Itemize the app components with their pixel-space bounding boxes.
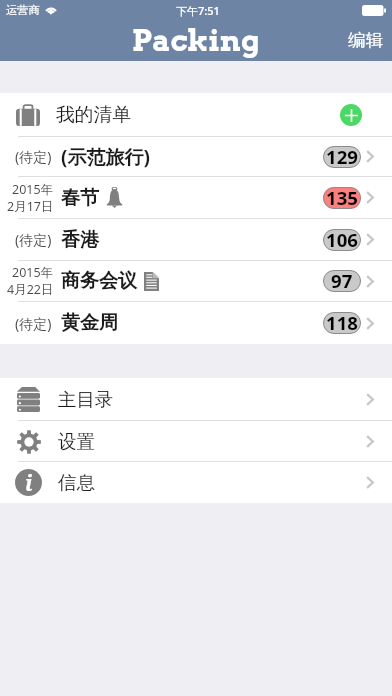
button[interactable]: (待定) (0, 302, 392, 344)
staticText: 118 (326, 312, 358, 332)
staticText: 我的清单 (56, 103, 132, 127)
staticText: 运营商 (6, 3, 40, 17)
button[interactable]: 编辑 (344, 23, 387, 57)
staticText: 2015年 (12, 181, 54, 198)
staticText: 黄金周 (61, 311, 118, 335)
button[interactable]: (待定) (0, 219, 392, 260)
staticText: Packing (132, 23, 260, 59)
button[interactable]: i (0, 462, 392, 503)
staticText: 4月22日 (7, 281, 54, 298)
staticText: (示范旅行) (61, 144, 150, 170)
staticText: 2月17日 (7, 198, 54, 215)
staticText: i (25, 469, 33, 496)
staticText: 设置 (58, 430, 95, 453)
staticText: 商务会议 (61, 269, 137, 293)
button[interactable]: 2015年 (0, 177, 392, 218)
button[interactable]: 2015年 (0, 261, 392, 301)
staticText: 97 (331, 270, 353, 290)
staticText: (待定) (15, 314, 52, 333)
staticText: (待定) (15, 230, 52, 249)
staticText: 下午7:51 (176, 3, 220, 18)
staticText: 主目录 (58, 388, 114, 411)
button[interactable]: (待定) (0, 137, 392, 176)
button[interactable]: Add list (340, 104, 362, 126)
staticText: 编辑 (348, 29, 383, 51)
staticText: 香港 (61, 228, 99, 252)
staticText: 106 (326, 229, 358, 249)
staticText: 信息 (58, 471, 95, 494)
staticText: 135 (326, 187, 358, 207)
button[interactable]: 我的清单 (0, 93, 392, 136)
button[interactable]: 主目录 (0, 378, 392, 420)
staticText: 2015年 (12, 264, 54, 281)
staticText: 春节 (61, 186, 99, 210)
staticText: (待定) (15, 147, 52, 166)
staticText: 129 (326, 146, 358, 166)
button[interactable]: 设置 (0, 421, 392, 461)
